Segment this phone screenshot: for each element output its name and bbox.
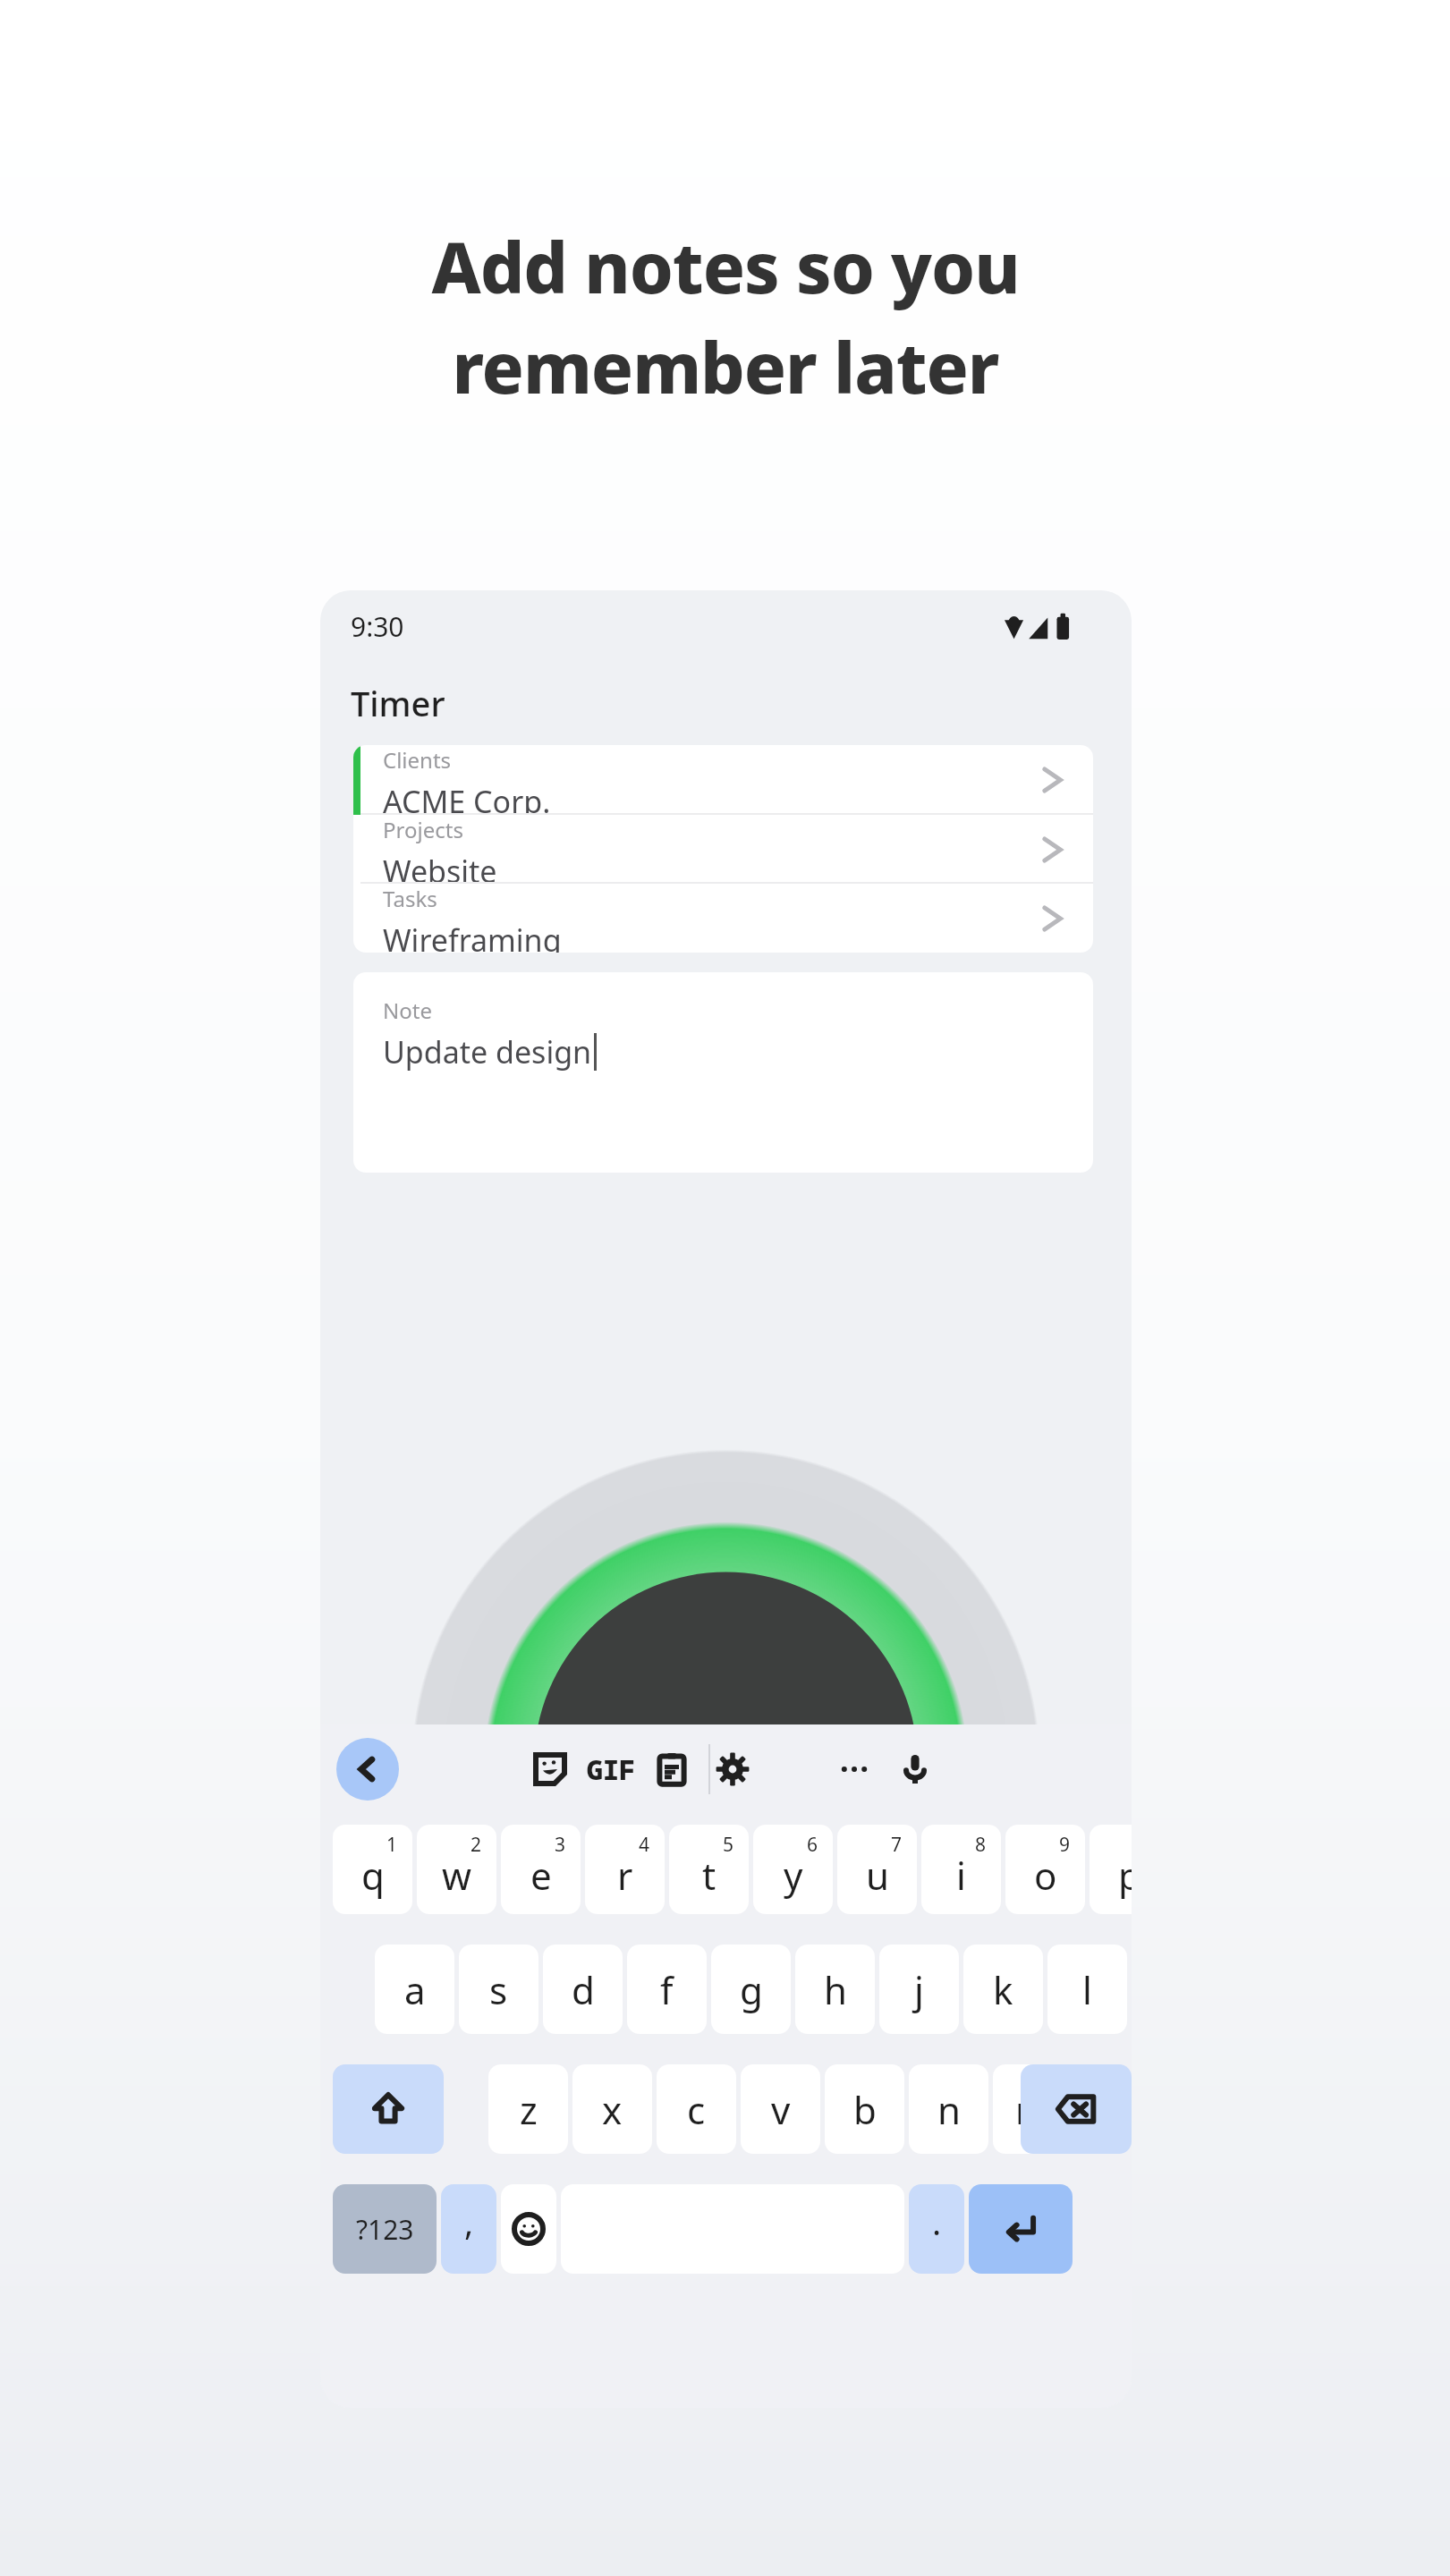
button[interactable]: 6: [753, 1825, 833, 1914]
staticText: s: [489, 1964, 508, 2015]
button[interactable]: h: [795, 1945, 875, 2034]
button[interactable]: k: [963, 1945, 1043, 2034]
staticText: i: [956, 1850, 966, 1901]
staticText: v: [771, 2084, 791, 2135]
button[interactable]: 2: [417, 1825, 496, 1914]
staticText: Add notes so you: [431, 219, 1020, 314]
staticText: z: [520, 2084, 538, 2135]
staticText: ,: [464, 2199, 474, 2245]
staticText: f: [660, 1964, 674, 2015]
staticText: 5: [723, 1832, 734, 1858]
button[interactable]: 9: [1005, 1825, 1085, 1914]
button[interactable]: v: [741, 2064, 820, 2154]
button[interactable]: Tasks: [353, 884, 1093, 953]
button[interactable]: Voice input: [884, 1738, 946, 1801]
button[interactable]: Start timer: [411, 1501, 1040, 1877]
staticText: Note: [383, 996, 432, 1025]
staticText: j: [914, 1964, 924, 2015]
button[interactable]: c: [657, 2064, 736, 2154]
button[interactable]: Comma: [441, 2184, 496, 2274]
button[interactable]: f: [627, 1945, 707, 2034]
staticText: GIF: [587, 1751, 635, 1788]
staticText: n: [937, 2084, 961, 2135]
staticText: q: [361, 1850, 385, 1901]
staticText: w: [442, 1850, 472, 1901]
button[interactable]: l: [1047, 1945, 1127, 2034]
button[interactable]: 8: [921, 1825, 1001, 1914]
button[interactable]: a: [375, 1945, 454, 2034]
staticText: 3: [555, 1832, 566, 1858]
button[interactable]: s: [459, 1945, 538, 2034]
button[interactable]: Projects: [353, 815, 1093, 884]
staticText: m: [1015, 2084, 1051, 2135]
staticText: ACME Corp.: [383, 781, 551, 815]
staticText: Tasks: [383, 884, 437, 913]
button[interactable]: j: [879, 1945, 959, 2034]
staticText: Clients: [383, 745, 452, 775]
staticText: x: [602, 2084, 623, 2135]
button[interactable]: 5: [669, 1825, 749, 1914]
staticText: 1: [386, 1832, 398, 1858]
button[interactable]: Back: [336, 1738, 399, 1801]
staticText: ?123: [356, 2211, 414, 2248]
staticText: 4: [639, 1832, 650, 1858]
button[interactable]: Backspace: [1021, 2064, 1132, 2154]
button[interactable]: Period: [909, 2184, 964, 2274]
staticText: Timer: [351, 680, 445, 726]
button[interactable]: Enter: [969, 2184, 1073, 2274]
button[interactable]: 4: [585, 1825, 665, 1914]
staticText: Projects: [383, 815, 463, 844]
button[interactable]: z: [488, 2064, 568, 2154]
staticText: h: [824, 1964, 847, 2015]
staticText: r: [617, 1850, 633, 1901]
button[interactable]: Clients: [353, 745, 1093, 815]
staticText: .: [932, 2199, 942, 2245]
button[interactable]: 3: [501, 1825, 581, 1914]
button[interactable]: g: [711, 1945, 791, 2034]
staticText: o: [1034, 1850, 1057, 1901]
staticText: Website: [383, 851, 497, 884]
staticText: Update design: [383, 1031, 592, 1072]
button[interactable]: 7: [837, 1825, 917, 1914]
staticText: k: [993, 1964, 1013, 2015]
button[interactable]: Shift: [333, 2064, 444, 2154]
staticText: 9:30: [351, 608, 404, 645]
staticText: c: [687, 2084, 706, 2135]
button[interactable]: GIF: [580, 1738, 642, 1801]
button[interactable]: b: [825, 2064, 904, 2154]
staticText: e: [530, 1850, 552, 1901]
staticText: y: [784, 1850, 803, 1901]
staticText: a: [404, 1964, 426, 2015]
staticText: t: [702, 1850, 717, 1901]
button[interactable]: Settings: [701, 1738, 764, 1801]
button[interactable]: d: [543, 1945, 623, 2034]
button[interactable]: Clipboard: [640, 1738, 703, 1801]
staticText: g: [740, 1964, 763, 2015]
staticText: 8: [975, 1832, 987, 1858]
staticText: 6: [807, 1832, 818, 1858]
button[interactable]: m: [993, 2064, 1073, 2154]
staticText: 9: [1059, 1832, 1071, 1858]
staticText: d: [572, 1964, 595, 2015]
button[interactable]: 1: [333, 1825, 412, 1914]
staticText: u: [866, 1850, 889, 1901]
staticText: Wireframing: [383, 919, 562, 953]
button[interactable]: 0: [1090, 1825, 1132, 1914]
staticText: p: [1118, 1850, 1132, 1901]
button[interactable]: x: [572, 2064, 652, 2154]
button[interactable]: More options: [823, 1738, 886, 1801]
button[interactable]: Emoji: [501, 2184, 556, 2274]
staticText: 7: [891, 1832, 903, 1858]
staticText: b: [853, 2084, 877, 2135]
staticText: l: [1082, 1964, 1092, 2015]
button[interactable]: Note: [353, 972, 1093, 1173]
staticText: 2: [471, 1832, 482, 1858]
staticText: remember later: [452, 319, 999, 414]
button[interactable]: n: [909, 2064, 988, 2154]
button[interactable]: Symbols: [333, 2184, 437, 2274]
button[interactable]: Stickers: [519, 1738, 581, 1801]
